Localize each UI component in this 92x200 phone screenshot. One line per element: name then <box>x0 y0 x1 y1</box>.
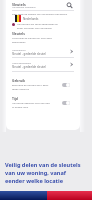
staticText: eender welke locatie <box>5 177 64 185</box>
staticText: Nederlands <box>23 17 39 21</box>
button[interactable]: Zoeken <box>65 1 73 9</box>
staticText: Tijd <box>12 96 18 100</box>
button[interactable]: Schakelaar <box>61 82 71 88</box>
staticText: Sleutels <box>12 31 25 35</box>
staticText: Veilig delen van de sleutels <box>5 161 81 169</box>
staticText: Bescherm de sleutels die u deelt <box>12 83 49 86</box>
staticText: Deel veilig de sleutels van uw woning me… <box>12 12 68 15</box>
staticText: of enkele uren <box>12 105 29 108</box>
staticText: Sleutel - gedeelde sleutel <box>12 65 46 69</box>
staticText: Uw digitale sleutelbos <box>12 6 36 9</box>
staticText: enkel zichtbaar voor uw gasten <box>17 26 53 29</box>
staticText: tegen misbruik <box>12 87 29 90</box>
staticText: van uw woning, vanaf <box>5 169 67 177</box>
staticText: gemakkelijk <box>12 40 26 43</box>
staticText: Uw sleutels zijn veilig opgeslagen en <box>17 22 58 25</box>
button[interactable]: Schakelaar <box>61 100 71 106</box>
staticText: Huissleutels <box>12 48 26 51</box>
button[interactable]: Huissleutels <box>12 45 74 58</box>
staticText: Sleutel - gedeelde sleutel <box>12 52 46 56</box>
staticText: Sleutels <box>12 2 26 7</box>
staticText: Uw sleutel deelbaar voor een dag <box>12 101 50 104</box>
staticText: Controleer de sleutels en toon deze <box>12 36 52 39</box>
button[interactable]: Aanvraagsleutels <box>12 58 74 71</box>
staticText: Gebruik <box>12 78 26 82</box>
staticText: Aanvraagsleutels <box>12 61 32 64</box>
